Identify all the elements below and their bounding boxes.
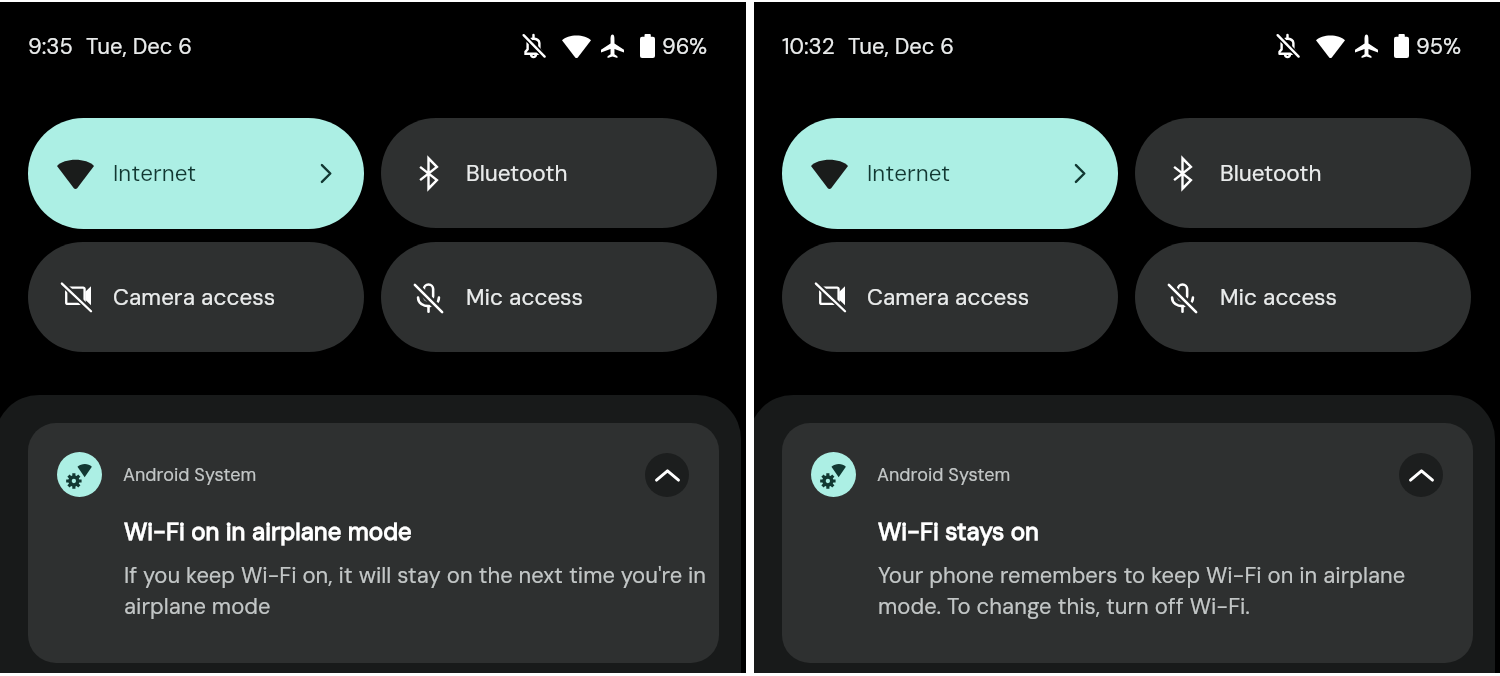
staticText: 95% <box>1416 32 1462 61</box>
staticText: Wi-Fi on in airplane mode <box>124 516 412 547</box>
button[interactable]: Bluetooth <box>1135 118 1471 228</box>
staticText: Mic access <box>466 283 584 312</box>
staticText: 9:35 <box>28 32 73 61</box>
staticText: Tue, Dec 6 <box>848 32 955 61</box>
staticText: Mic access <box>1220 283 1338 312</box>
button[interactable]: Collapse notification <box>1399 453 1443 497</box>
staticText: Internet <box>867 159 951 188</box>
staticText: Bluetooth <box>466 159 568 188</box>
staticText: Camera access <box>867 283 1030 312</box>
staticText: Tue, Dec 6 <box>86 32 193 61</box>
button[interactable]: Mic access <box>381 242 717 352</box>
button[interactable]: Internet <box>28 118 364 229</box>
button[interactable]: Android System <box>782 423 1473 663</box>
button[interactable]: Bluetooth <box>381 118 717 228</box>
staticText: If you keep Wi-Fi on, it will stay on th… <box>124 561 719 621</box>
staticText: 96% <box>662 32 708 61</box>
button[interactable]: Camera access <box>782 242 1118 352</box>
button[interactable]: Collapse notification <box>645 453 689 497</box>
staticText: Your phone remembers to keep Wi-Fi on in… <box>878 561 1423 621</box>
staticText: 10:32 <box>782 32 835 61</box>
staticText: Internet <box>113 159 197 188</box>
staticText: Android System <box>123 463 257 486</box>
button[interactable]: Internet <box>782 118 1118 229</box>
button[interactable]: Camera access <box>28 242 364 352</box>
staticText: Android System <box>877 463 1011 486</box>
staticText: Wi-Fi stays on <box>878 516 1039 547</box>
staticText: Camera access <box>113 283 276 312</box>
button[interactable]: Mic access <box>1135 242 1471 352</box>
button[interactable]: Android System <box>28 423 719 663</box>
staticText: Bluetooth <box>1220 159 1322 188</box>
